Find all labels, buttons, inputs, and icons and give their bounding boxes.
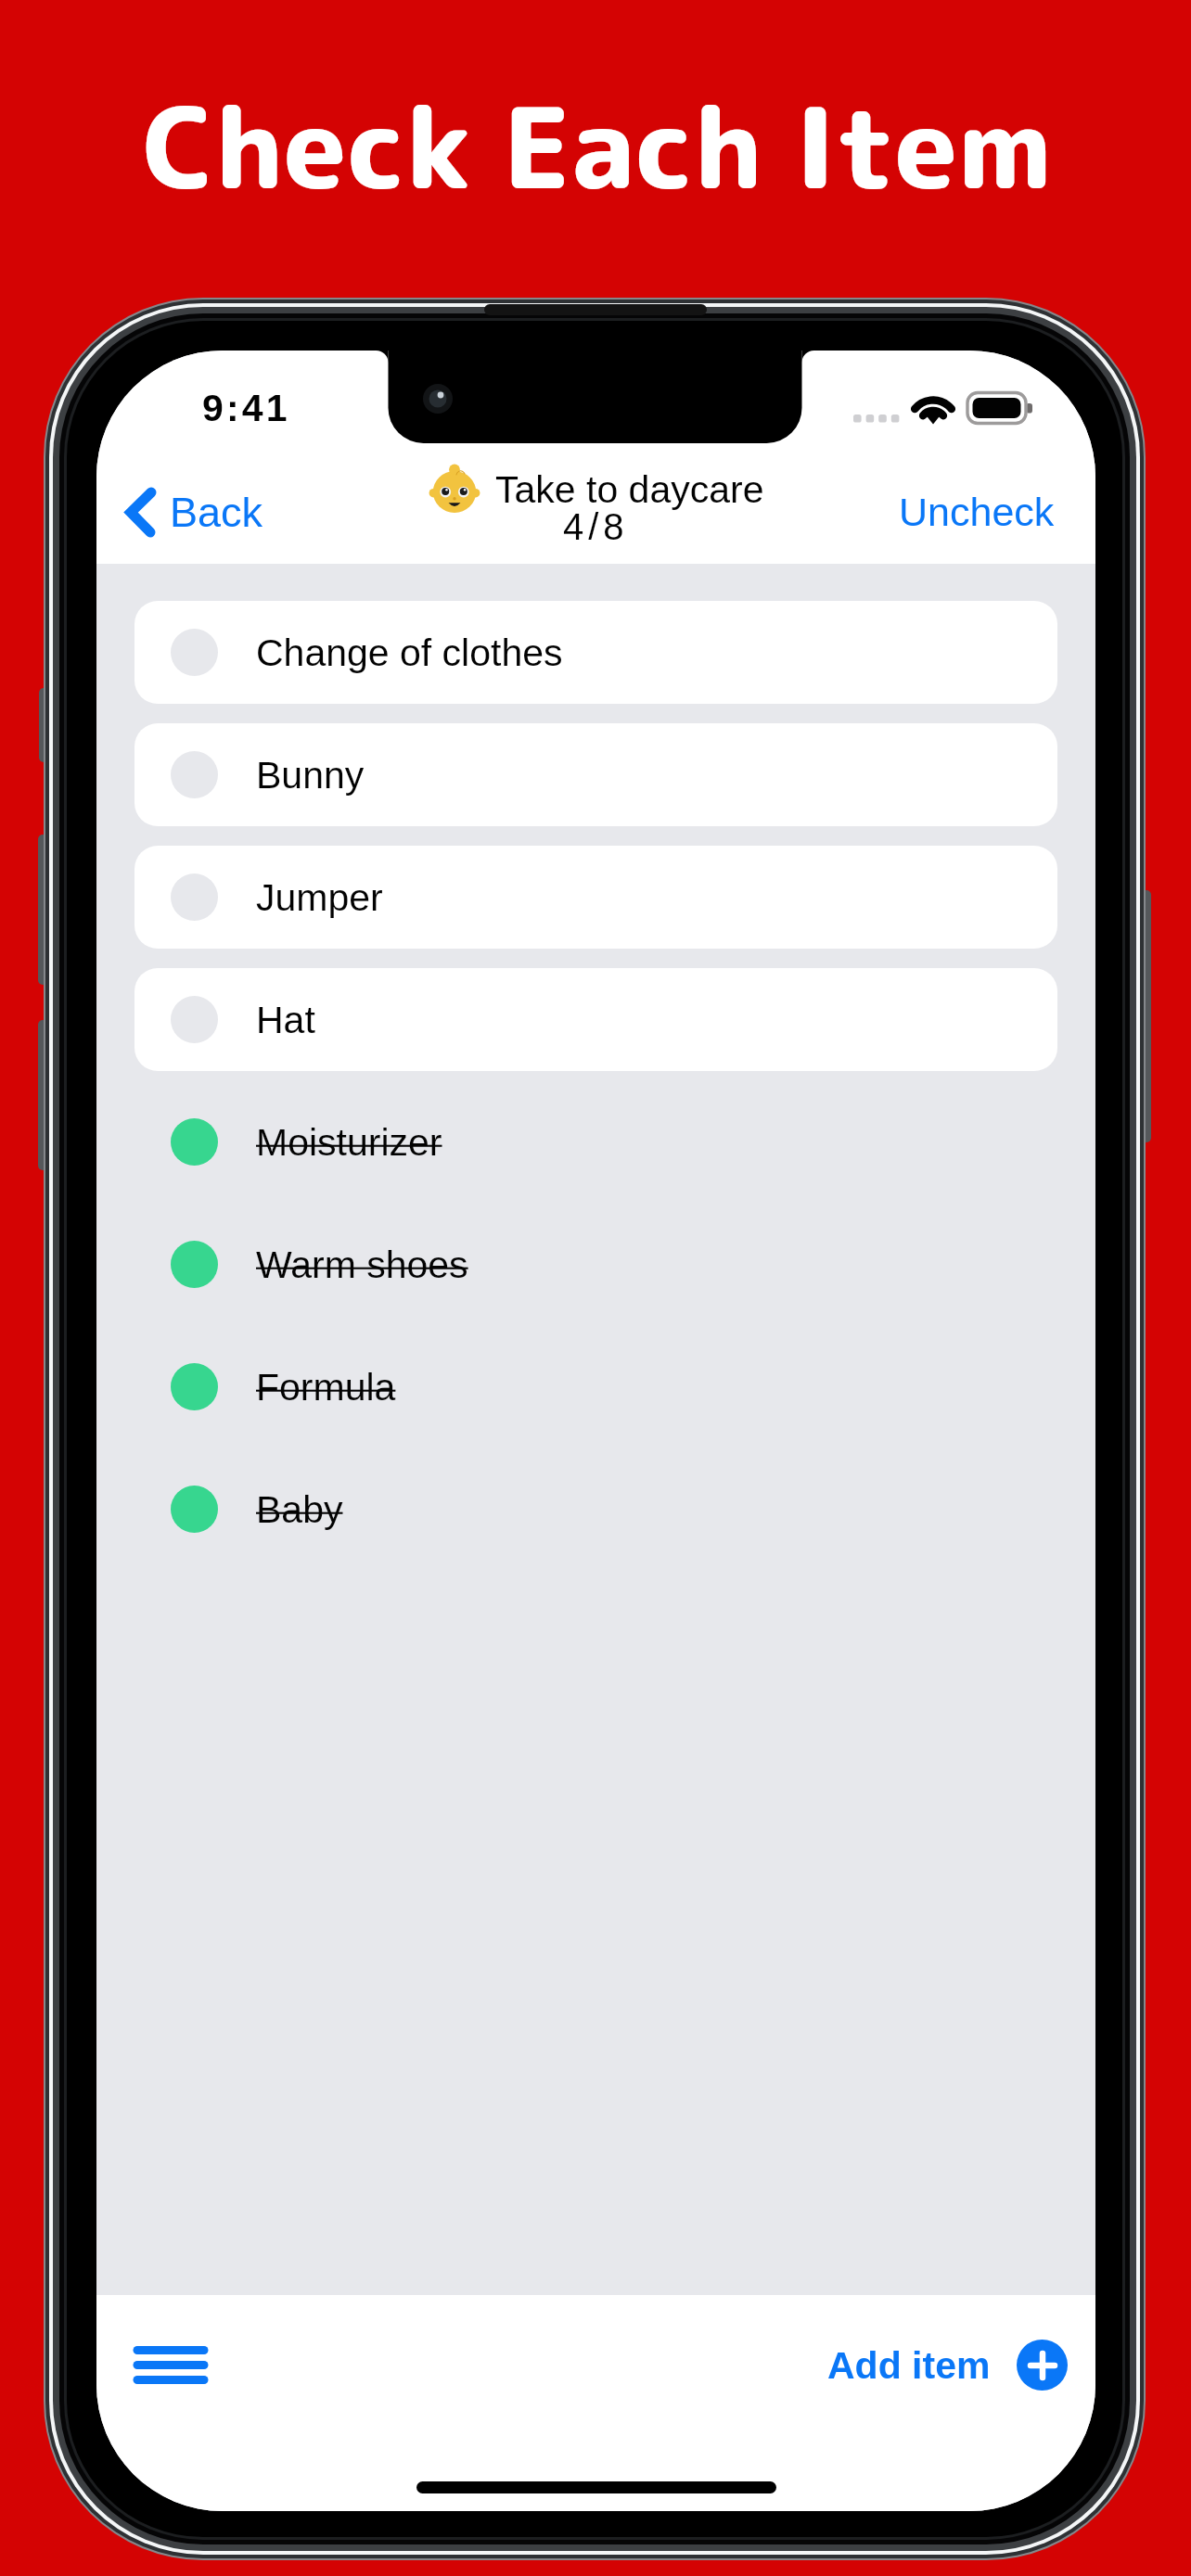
staticText: Hat <box>256 999 315 1041</box>
staticText: Back <box>170 489 263 535</box>
staticText: Change of clothes <box>256 631 563 674</box>
staticText: Baby <box>256 1488 343 1531</box>
staticText: Take to daycare <box>495 468 764 511</box>
button[interactable]: Back <box>117 475 273 549</box>
staticText: Uncheck <box>899 490 1055 534</box>
staticText: Add item <box>827 2344 991 2387</box>
button[interactable]: Menu <box>115 2324 226 2406</box>
button[interactable]: Baby <box>134 1458 1057 1561</box>
staticText: Check Each Item <box>143 69 1053 223</box>
button[interactable]: Change of clothes <box>134 601 1057 704</box>
staticText: 9:41 <box>202 387 290 429</box>
staticText: Warm shoes <box>256 1243 468 1286</box>
staticText: Bunny <box>256 754 365 797</box>
button[interactable]: Uncheck <box>875 475 1079 549</box>
staticText: Jumper <box>256 876 383 919</box>
button[interactable]: Warm shoes <box>134 1213 1057 1316</box>
button[interactable]: Formula <box>134 1335 1057 1438</box>
button[interactable]: Hat <box>134 968 1057 1071</box>
button[interactable]: Jumper <box>134 846 1057 949</box>
button[interactable]: Bunny <box>134 723 1057 826</box>
button[interactable]: Moisturizer <box>134 1090 1057 1193</box>
staticText: 4/8 <box>563 506 629 548</box>
button[interactable]: Add item <box>803 2321 1092 2409</box>
staticText: Formula <box>256 1366 396 1409</box>
staticText: Moisturizer <box>256 1121 442 1164</box>
